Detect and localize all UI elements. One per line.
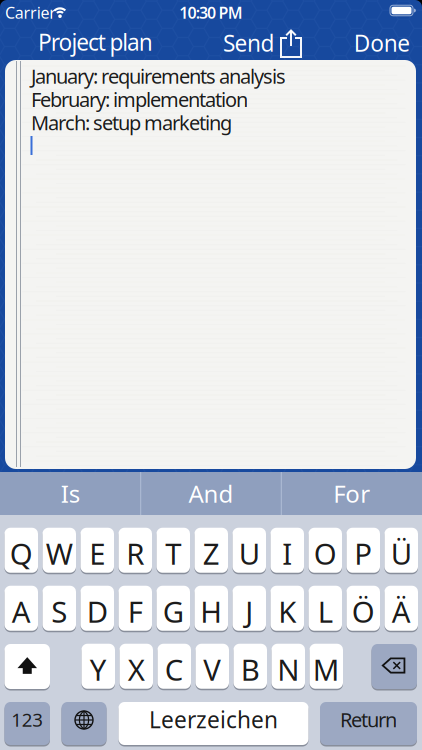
staticText: Leerzeichen [149, 704, 278, 734]
button[interactable]: V [195, 644, 229, 690]
button[interactable]: Return [320, 702, 417, 746]
staticText: Z [203, 534, 220, 573]
staticText: Y [90, 650, 107, 689]
button[interactable]: W [42, 528, 76, 574]
staticText: O [314, 534, 337, 573]
staticText: R [126, 534, 144, 573]
button[interactable]: Z [194, 528, 228, 574]
button[interactable]: Shift [4, 644, 50, 690]
button[interactable]: E [80, 528, 114, 574]
button[interactable]: Y [81, 644, 115, 690]
staticText: T [165, 534, 181, 573]
staticText: V [203, 650, 221, 689]
button[interactable]: Space [118, 702, 308, 746]
staticText: I [282, 534, 292, 573]
staticText: U [239, 534, 260, 573]
button[interactable]: Ö [346, 586, 380, 632]
staticText: Is [61, 478, 80, 509]
staticText: 123 [11, 707, 43, 732]
button[interactable]: L [308, 586, 342, 632]
staticText: B [241, 650, 260, 689]
staticText: Ä [392, 592, 411, 631]
button[interactable]: Q [4, 528, 38, 574]
button[interactable]: F [118, 586, 152, 632]
staticText: C [165, 650, 184, 689]
button[interactable]: J [232, 586, 266, 632]
staticText: N [277, 650, 299, 689]
button[interactable]: D [80, 586, 114, 632]
staticText: February: implementation [31, 86, 248, 113]
button[interactable]: K [270, 586, 304, 632]
button[interactable]: Next keyboard [61, 702, 106, 746]
button[interactable]: Delete [371, 644, 417, 690]
staticText: Return [340, 706, 397, 733]
button[interactable]: M [309, 644, 343, 690]
button[interactable]: I [270, 528, 304, 574]
staticText: Send [223, 28, 274, 58]
button[interactable]: Is [5, 472, 135, 515]
staticText: Done [354, 28, 410, 58]
staticText: A [12, 592, 31, 631]
button[interactable]: Done [350, 23, 414, 63]
staticText: For [333, 478, 370, 509]
staticText: 10:30 PM [179, 2, 243, 23]
button[interactable]: T [156, 528, 190, 574]
staticText: Ö [352, 592, 375, 631]
button[interactable]: And [146, 472, 276, 515]
button[interactable]: Ü [384, 528, 418, 574]
staticText: Q [10, 534, 33, 573]
button[interactable]: U [232, 528, 266, 574]
button[interactable]: G [156, 586, 190, 632]
button[interactable]: N [271, 644, 305, 690]
staticText: X [128, 650, 145, 689]
staticText: E [89, 534, 105, 573]
button[interactable]: R [118, 528, 152, 574]
staticText: Project plan [38, 27, 153, 57]
staticText: J [245, 592, 253, 631]
button[interactable]: A [4, 586, 38, 632]
staticText: Carrier [5, 2, 56, 23]
button[interactable]: For [287, 472, 417, 515]
staticText: And [188, 478, 233, 509]
button[interactable]: Ä [384, 586, 418, 632]
staticText: H [200, 592, 222, 631]
staticText: G [163, 592, 184, 631]
staticText: P [354, 534, 372, 573]
button[interactable]: O [308, 528, 342, 574]
button[interactable]: B [233, 644, 267, 690]
staticText: March: setup marketing [31, 109, 232, 136]
button[interactable]: C [157, 644, 191, 690]
button[interactable]: P [346, 528, 380, 574]
button[interactable]: X [119, 644, 153, 690]
button[interactable]: H [194, 586, 228, 632]
staticText: D [87, 592, 108, 631]
staticText: Ü [391, 534, 412, 573]
staticText: K [278, 592, 296, 631]
button[interactable]: S [42, 586, 76, 632]
staticText: January: requirements analysis [31, 63, 286, 89]
staticText: W [46, 534, 73, 573]
button[interactable]: Send [212, 23, 312, 63]
button[interactable]: Numbers [4, 702, 50, 746]
staticText: F [128, 592, 143, 631]
staticText: L [318, 592, 333, 631]
staticText: M [313, 650, 340, 689]
staticText: S [51, 592, 67, 631]
